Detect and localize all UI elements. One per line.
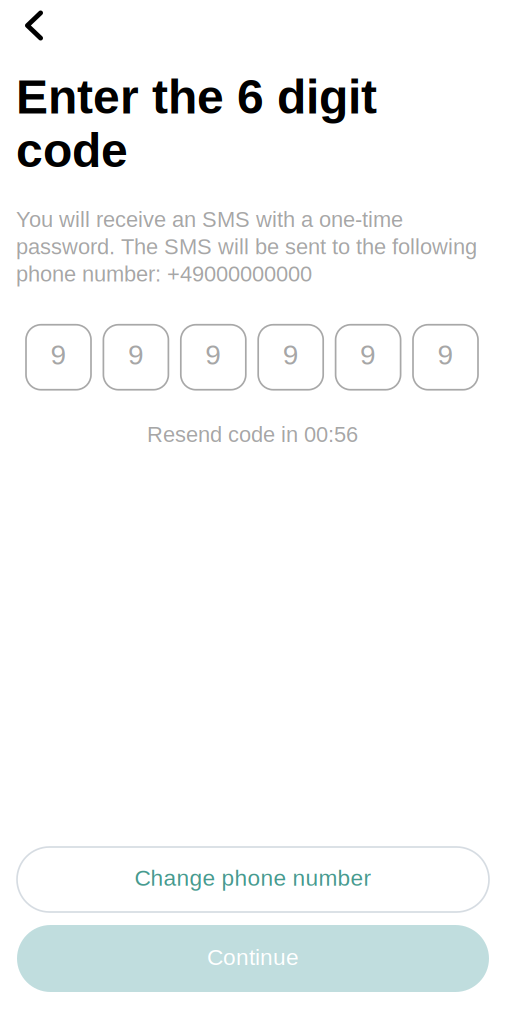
button[interactable]: Digit 9 [413,325,478,390]
staticText: Continue [207,944,299,970]
staticText: 9 [283,339,299,370]
button[interactable]: Digit 9 [181,325,246,390]
staticText: 9 [205,339,221,370]
button[interactable]: Digit 9 [336,325,401,390]
button[interactable]: Continue [17,925,489,992]
button[interactable]: Back [0,0,56,46]
staticText: You will receive an SMS with a one-time … [16,207,477,286]
button[interactable]: Change phone number [17,847,489,912]
button[interactable]: Digit 9 [258,325,323,390]
staticText: Enter the 6 digit code [16,70,377,177]
button[interactable]: Digit 9 [26,325,91,390]
staticText: Change phone number [134,865,371,890]
staticText: Resend code in 00:56 [147,422,358,446]
staticText: 9 [360,339,376,370]
staticText: 9 [50,339,66,370]
staticText: 9 [437,339,453,370]
button[interactable]: Digit 9 [103,325,168,390]
staticText: 9 [128,339,144,370]
